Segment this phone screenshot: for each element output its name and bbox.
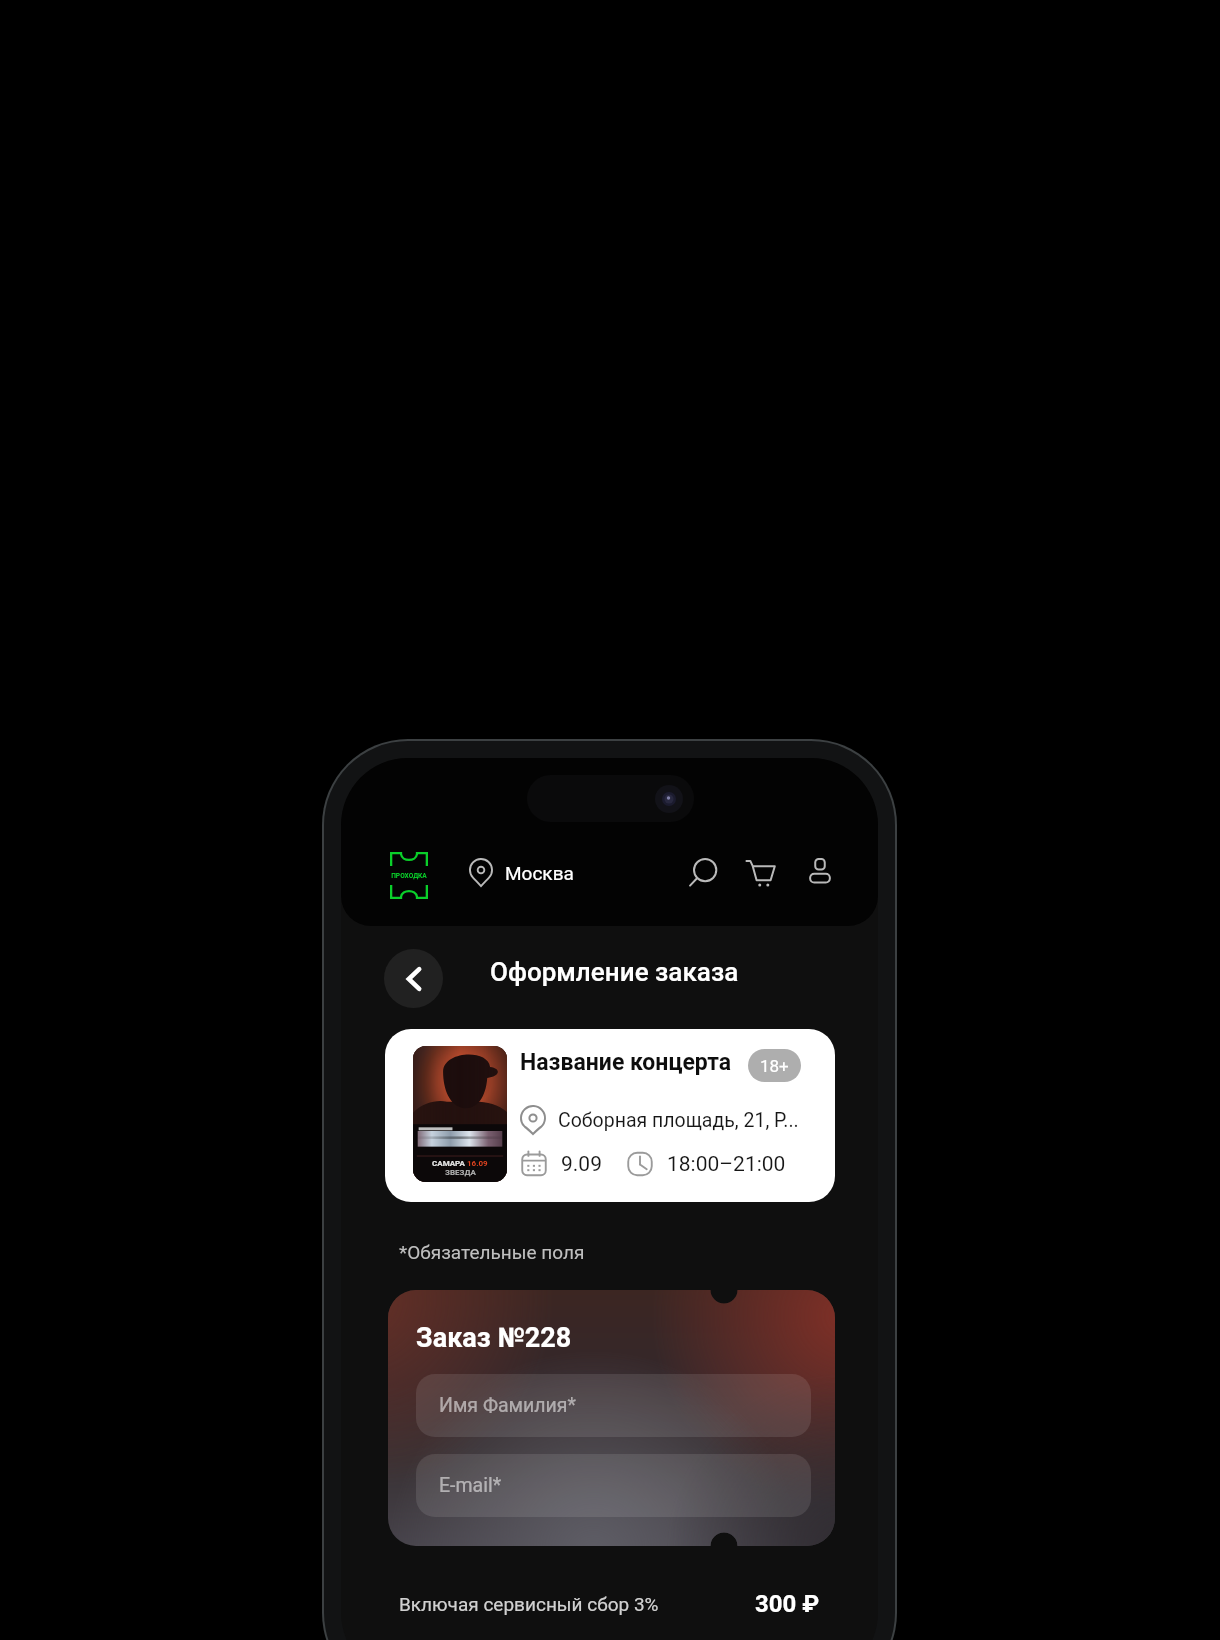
button[interactable]: Cart <box>744 855 779 890</box>
staticText: 300 ₽ <box>755 1590 820 1618</box>
staticText: Оформление заказа <box>490 957 739 987</box>
staticText: E-mail* <box>439 1474 502 1497</box>
staticText: Соборная площадь, 21, Р... <box>558 1109 799 1132</box>
staticText: ПРОХОДКА <box>391 872 427 880</box>
staticText: Название концерта <box>520 1049 732 1076</box>
staticText: 16.09 <box>467 1159 488 1168</box>
staticText: Заказ №228 <box>416 1322 572 1354</box>
staticText: Москва <box>505 862 574 884</box>
staticText: Имя Фамилия* <box>439 1394 576 1417</box>
staticText: *Обязательные поля <box>399 1241 585 1263</box>
staticText: САМАРА <box>432 1159 467 1168</box>
button[interactable]: Имя Фамилия* <box>416 1374 811 1437</box>
staticText: Включая сервисный сбор 3% <box>399 1593 659 1615</box>
button[interactable]: САМАРА <box>385 1029 835 1202</box>
staticText: ЗВЕЗДА <box>445 1168 476 1177</box>
button[interactable]: Москва <box>469 858 574 887</box>
button[interactable]: E-mail* <box>416 1454 811 1517</box>
staticText: 18:00–21:00 <box>667 1152 786 1177</box>
button[interactable]: Search <box>685 855 721 891</box>
button[interactable]: Profile <box>803 855 837 889</box>
staticText: 18+ <box>760 1056 789 1076</box>
button[interactable]: Back <box>384 949 443 1008</box>
staticText: 9.09 <box>561 1152 602 1177</box>
